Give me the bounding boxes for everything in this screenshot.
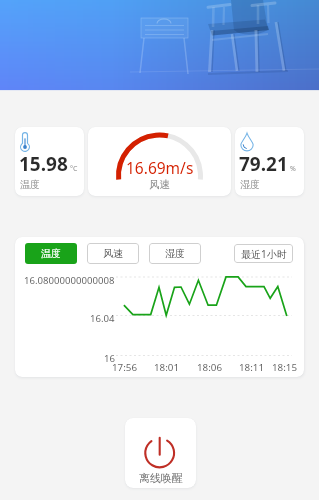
staticText: 18:06 xyxy=(197,361,223,374)
button[interactable]: 最近1小时 xyxy=(234,244,293,263)
staticText: 风速 xyxy=(103,247,123,260)
button[interactable]: 湿度 xyxy=(149,243,201,264)
button[interactable]: 温度 xyxy=(25,243,77,264)
staticText: % xyxy=(290,164,296,174)
staticText: 最近1小时 xyxy=(241,247,287,261)
button[interactable]: 15.98 xyxy=(15,127,84,196)
staticText: 温度 xyxy=(41,247,61,260)
button[interactable]: 离线唤醒 xyxy=(125,418,196,488)
staticText: 离线唤醒 xyxy=(139,471,183,485)
staticText: 16 xyxy=(104,352,115,365)
staticText: 17:56 xyxy=(112,361,138,374)
button[interactable]: 风速 xyxy=(87,243,139,264)
staticText: 温度 xyxy=(20,178,40,191)
staticText: 16.08000000000008 xyxy=(24,274,115,287)
staticText: 16.69m/s xyxy=(126,157,194,178)
staticText: °C xyxy=(70,164,78,174)
staticText: 16.04 xyxy=(90,312,115,325)
staticText: 18:11 xyxy=(239,361,265,374)
button[interactable]: 16.69m/s xyxy=(88,127,231,196)
staticText: 18:01 xyxy=(154,361,180,374)
staticText: 湿度 xyxy=(240,178,260,191)
staticText: 湿度 xyxy=(165,247,185,260)
staticText: 风速 xyxy=(149,178,170,191)
staticText: 79.21 xyxy=(239,151,288,177)
staticText: 15.98 xyxy=(19,151,68,177)
button[interactable]: 79.21 xyxy=(235,127,304,196)
staticText: 18:15 xyxy=(272,361,298,374)
